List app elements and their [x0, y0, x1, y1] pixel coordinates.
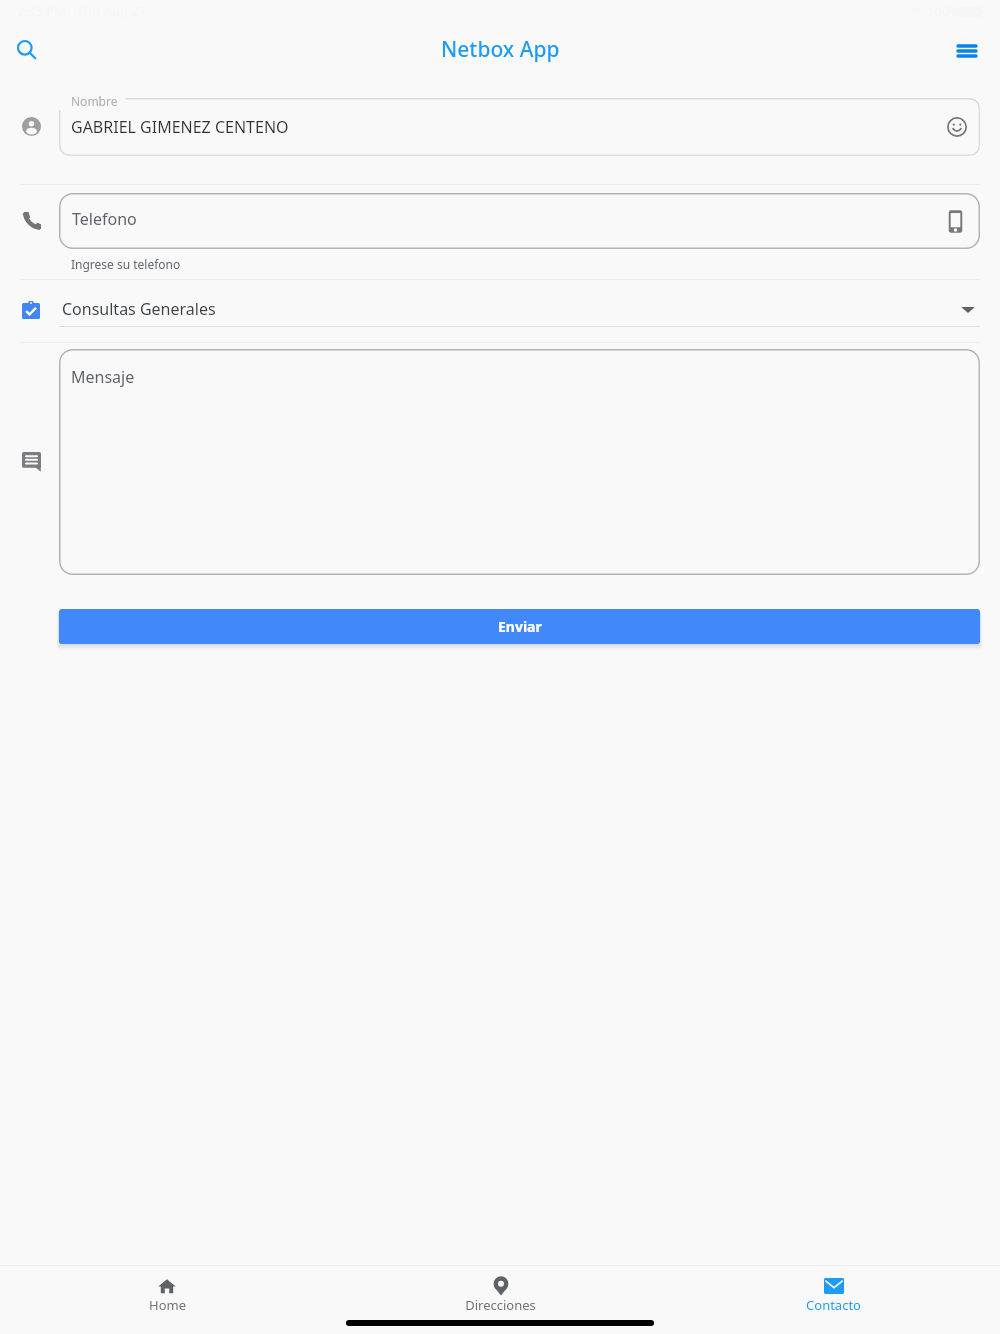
button[interactable]: Home [0, 1270, 334, 1314]
button[interactable]: Use phone number [943, 209, 967, 233]
button[interactable]: Consultas Generales [0, 285, 1000, 333]
button[interactable]: Mensaje [59, 349, 980, 575]
button[interactable]: GABRIEL GIMENEZ CENTENO [59, 98, 980, 156]
staticText: Netbox App [441, 35, 560, 64]
staticText: GABRIEL GIMENEZ CENTENO [71, 116, 289, 138]
staticText: Home [149, 1296, 186, 1314]
button[interactable]: Search [7, 31, 47, 71]
staticText: Direcciones [465, 1296, 536, 1314]
staticText: Consultas Generales [62, 298, 216, 320]
button[interactable]: Telefono [59, 193, 980, 249]
button[interactable]: Menu [949, 33, 985, 69]
button[interactable]: Enviar [59, 609, 980, 644]
staticText: Enviar [498, 617, 542, 636]
button[interactable]: Contacto [667, 1270, 1000, 1314]
staticText: Nombre [71, 93, 118, 109]
staticText: Ingrese su telefono [71, 256, 181, 272]
button[interactable]: Emoji [944, 114, 970, 140]
staticText: Telefono [72, 208, 137, 230]
button[interactable]: Direcciones [334, 1270, 667, 1314]
staticText: Mensaje [71, 366, 135, 388]
staticText: Contacto [806, 1296, 861, 1314]
